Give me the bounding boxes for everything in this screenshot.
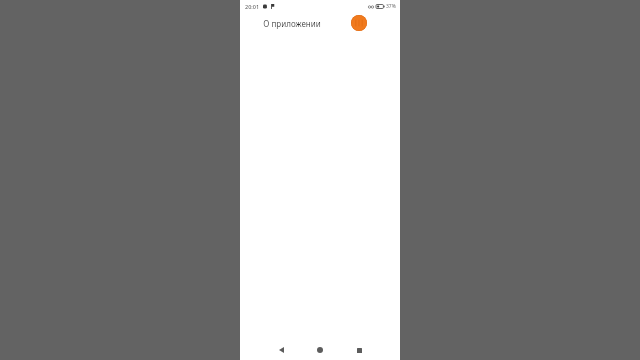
staticText: О приложении (263, 18, 321, 29)
button[interactable]: Back (274, 343, 288, 357)
staticText: 20:01 (245, 3, 260, 10)
staticText: 37% (386, 3, 396, 10)
button[interactable]: Account (351, 15, 367, 31)
button[interactable]: Recent apps (352, 343, 366, 357)
button[interactable]: Home (313, 343, 327, 357)
